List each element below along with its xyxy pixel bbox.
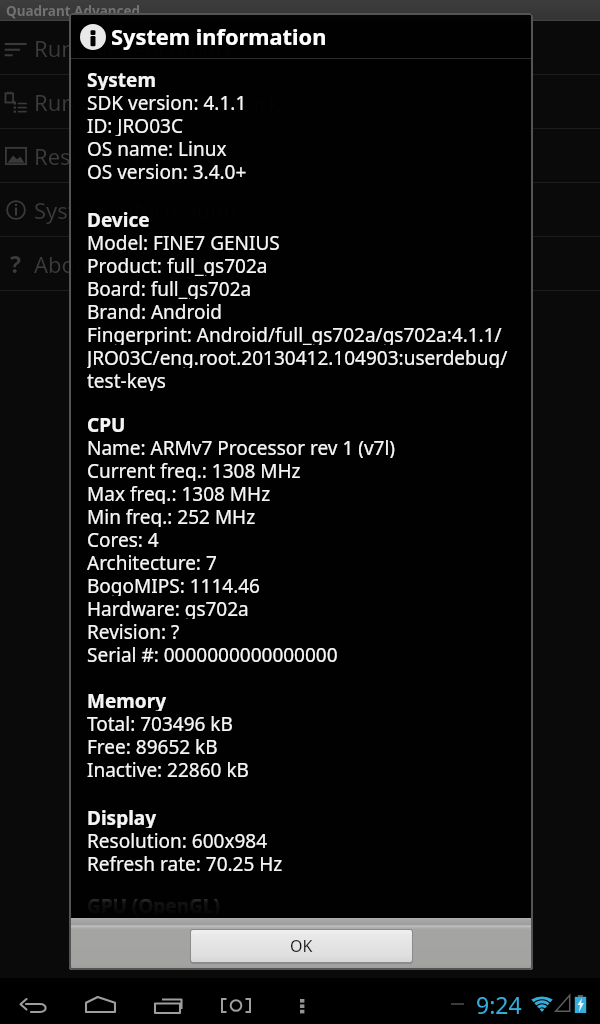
staticText: Board: full_gs702a: [87, 276, 252, 299]
button[interactable]: Screenshot: [216, 986, 252, 1022]
staticText: Device: [87, 207, 150, 230]
staticText: Fingerprint: Android/full_gs702a/gs702a:…: [87, 322, 502, 345]
staticText: OK: [290, 935, 313, 957]
button[interactable]: Recents: [150, 986, 186, 1022]
staticText: Serial #: 0000000000000000: [87, 642, 338, 665]
staticText: OS name: Linux: [87, 136, 227, 159]
staticText: System: [87, 67, 156, 90]
staticText: Brand: Android: [87, 299, 223, 322]
staticText: SDK version: 4.1.1: [87, 90, 247, 113]
staticText: Revision: ?: [87, 619, 180, 642]
staticText: OS version: 3.4.0+: [87, 159, 247, 182]
staticText: BogoMIPS: 1114.46: [87, 573, 260, 596]
staticText: Run full benchmark: [34, 33, 237, 63]
staticText: Current freq.: 1308 MHz: [87, 458, 301, 481]
button[interactable]: Run full benchmark: [0, 21, 600, 74]
staticText: ID: JRO03C: [87, 113, 183, 136]
staticText: Name: ARMv7 Processor rev 1 (v7l): [87, 435, 396, 458]
staticText: System information: [111, 22, 327, 52]
staticText: Min freq.: 252 MHz: [87, 504, 256, 527]
staticText: Model: FINE7 GENIUS: [87, 230, 280, 253]
staticText: Quadrant Advanced: [6, 2, 141, 20]
button[interactable]: Back: [16, 986, 52, 1022]
button[interactable]: ?: [0, 237, 600, 290]
staticText: System information: [34, 195, 238, 225]
button[interactable]: OK: [191, 930, 412, 962]
staticText: GPU (OpenGL): [87, 893, 220, 916]
staticText: Result browser: [34, 141, 188, 171]
staticText: Cores: 4: [87, 527, 159, 550]
staticText: Refresh rate: 70.25 Hz: [87, 851, 283, 874]
staticText: CPU: [87, 412, 126, 435]
staticText: test-keys: [87, 368, 166, 391]
staticText: About: [34, 249, 97, 279]
staticText: Architecture: 7: [87, 550, 217, 573]
staticText: Run custom benchmark: [34, 87, 281, 117]
staticText: Memory: [87, 688, 167, 711]
staticText: Inactive: 22860 kB: [87, 757, 249, 780]
button[interactable]: System information: [0, 183, 600, 236]
staticText: Total: 703496 kB: [87, 711, 233, 734]
button[interactable]: Run custom benchmark: [0, 75, 600, 128]
button[interactable]: Result browser: [0, 129, 600, 182]
staticText: Max freq.: 1308 MHz: [87, 481, 271, 504]
staticText: ?: [10, 248, 21, 279]
staticText: Display: [87, 805, 157, 828]
staticText: Resolution: 600x984: [87, 828, 268, 851]
button[interactable]: More options: [285, 986, 321, 1022]
staticText: Hardware: gs702a: [87, 596, 249, 619]
staticText: 9:24: [476, 989, 522, 1020]
staticText: JRO03C/eng.root.20130412.104903:userdebu…: [87, 345, 508, 368]
staticText: Free: 89652 kB: [87, 734, 218, 757]
button[interactable]: Home: [80, 986, 116, 1022]
staticText: Product: full_gs702a: [87, 253, 268, 276]
